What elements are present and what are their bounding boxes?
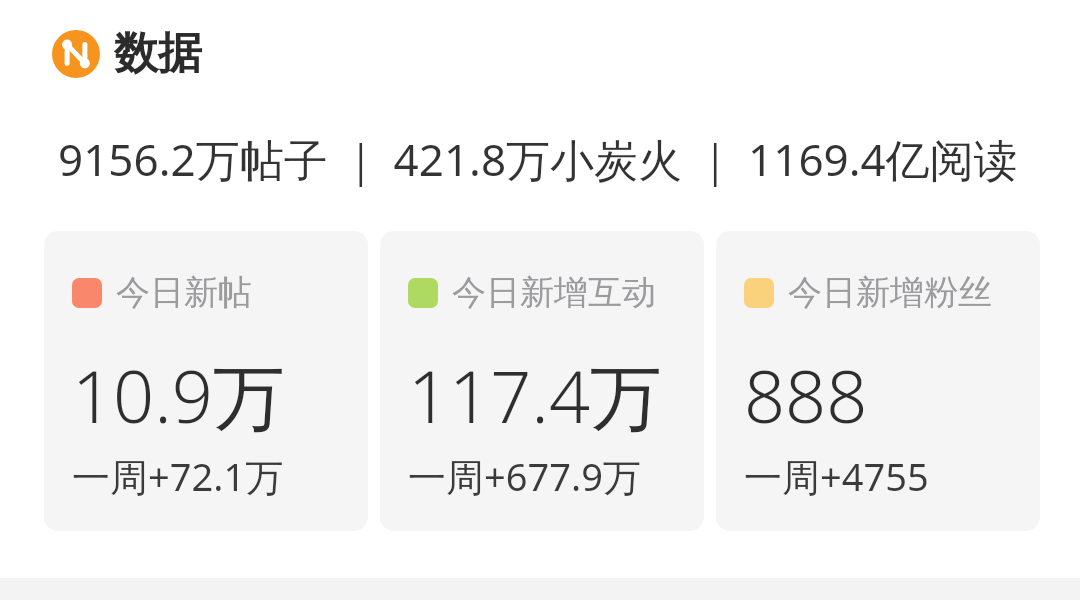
staticText: 888	[744, 346, 868, 444]
staticText: 一周+72.1万	[72, 450, 284, 502]
staticText: 10.9万	[72, 346, 285, 444]
staticText: 9156.2万帖子 ｜ 421.8万小炭火 ｜ 1169.4亿阅读	[58, 129, 1018, 189]
staticText: 今日新增互动	[452, 271, 656, 314]
staticText: 今日新增粉丝	[788, 271, 992, 314]
staticText: 今日新帖	[116, 271, 252, 314]
staticText: 一周+677.9万	[408, 450, 641, 502]
button[interactable]: App logo	[52, 26, 1080, 81]
staticText: 一周+4755	[744, 450, 929, 502]
other: App logo	[52, 30, 100, 78]
staticText: 117.4万	[408, 346, 663, 444]
button[interactable]: 今日新增粉丝	[716, 231, 1040, 531]
button[interactable]: 今日新增互动	[380, 231, 704, 531]
button[interactable]: 今日新帖	[44, 231, 368, 531]
staticText: 数据	[114, 26, 202, 81]
